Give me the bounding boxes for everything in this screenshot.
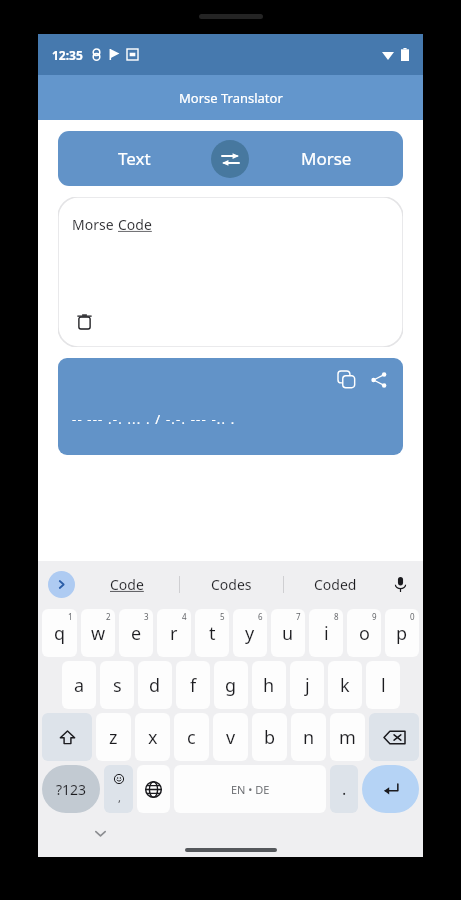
staticText: l	[381, 673, 386, 698]
button[interactable]: f	[176, 661, 210, 709]
button[interactable]: Code	[75, 561, 179, 607]
button[interactable]: More	[48, 571, 75, 598]
button[interactable]: Share	[366, 367, 391, 392]
staticText: q	[54, 621, 66, 646]
button[interactable]: Shift	[42, 713, 92, 761]
button[interactable]: x	[135, 713, 170, 761]
button[interactable]: Enter	[362, 765, 419, 813]
button[interactable]: t	[195, 609, 229, 657]
staticText: 5	[220, 611, 225, 622]
button[interactable]: b	[252, 713, 287, 761]
staticText: v	[226, 725, 236, 750]
button[interactable]: o	[347, 609, 381, 657]
staticText: i	[324, 621, 329, 646]
button[interactable]: g	[214, 661, 248, 709]
staticText: k	[340, 673, 350, 698]
staticText: e	[131, 621, 142, 646]
button[interactable]: j	[290, 661, 324, 709]
button[interactable]: Copy	[334, 367, 359, 392]
button[interactable]: Coded	[284, 561, 387, 607]
staticText: Morse	[301, 147, 352, 170]
button[interactable]: Swap	[211, 140, 249, 178]
staticText: z	[109, 725, 118, 750]
button[interactable]: n	[291, 713, 326, 761]
button[interactable]: Backspace	[369, 713, 419, 761]
button[interactable]: i	[309, 609, 343, 657]
staticText: Code	[118, 215, 152, 234]
button[interactable]: l	[366, 661, 400, 709]
staticText: Text	[118, 147, 151, 170]
staticText: Morse Translator	[179, 89, 283, 107]
staticText: m	[339, 725, 356, 750]
button[interactable]: y	[233, 609, 267, 657]
button[interactable]: Codes	[180, 561, 283, 607]
button[interactable]: Emoji and comma	[104, 765, 133, 813]
button[interactable]: a	[62, 661, 96, 709]
staticText: y	[245, 621, 255, 646]
button[interactable]: m	[330, 713, 365, 761]
staticText: 0	[410, 611, 415, 622]
staticText: t	[209, 621, 216, 646]
staticText: h	[263, 673, 275, 698]
staticText: -- --- .-. ... . / -.-. --- -.. .	[72, 410, 236, 428]
button[interactable]: Clear	[70, 307, 98, 335]
staticText: o	[359, 621, 370, 646]
staticText: w	[91, 621, 106, 646]
button[interactable]: q	[42, 609, 77, 657]
button[interactable]: Voice input	[387, 571, 413, 597]
staticText: x	[148, 725, 158, 750]
button[interactable]: Hide keyboard	[88, 821, 112, 845]
button[interactable]: d	[138, 661, 172, 709]
button[interactable]: r	[157, 609, 191, 657]
button[interactable]: Text	[58, 131, 211, 186]
staticText: .	[342, 778, 347, 800]
button[interactable]: k	[328, 661, 362, 709]
button[interactable]: v	[213, 713, 248, 761]
staticText: r	[170, 621, 178, 646]
staticText: 7	[296, 611, 301, 622]
staticText: Coded	[314, 575, 357, 594]
staticText: 6	[258, 611, 263, 622]
staticText: 2	[106, 611, 111, 622]
staticText: a	[74, 673, 85, 698]
staticText: Codes	[211, 575, 252, 594]
staticText: Code	[110, 575, 144, 594]
staticText: 3	[144, 611, 149, 622]
staticText: 4	[182, 611, 187, 622]
staticText: ,	[118, 790, 121, 805]
button[interactable]: u	[271, 609, 305, 657]
staticText: s	[113, 673, 122, 698]
staticText: 9	[372, 611, 377, 622]
button[interactable]: e	[119, 609, 153, 657]
button[interactable]: w	[81, 609, 115, 657]
staticText: j	[305, 673, 310, 698]
staticText: f	[190, 673, 197, 698]
staticText: c	[187, 725, 196, 750]
button[interactable]: s	[100, 661, 134, 709]
staticText: d	[149, 673, 161, 698]
staticText: 8	[334, 611, 339, 622]
staticText: EN • DE	[231, 782, 270, 797]
staticText: 1	[68, 611, 73, 622]
staticText: ?123	[56, 780, 87, 799]
button[interactable]: ?123	[42, 765, 100, 813]
button[interactable]: EN • DE	[174, 765, 326, 813]
button[interactable]: p	[385, 609, 419, 657]
staticText: Morse	[72, 215, 118, 234]
button[interactable]: Change language	[137, 765, 170, 813]
button[interactable]: .	[330, 765, 358, 813]
staticText: p	[396, 621, 408, 646]
button[interactable]: c	[174, 713, 209, 761]
staticText: g	[225, 673, 237, 698]
staticText: b	[264, 725, 276, 750]
button[interactable]: h	[252, 661, 286, 709]
staticText: n	[303, 725, 315, 750]
button[interactable]: z	[96, 713, 131, 761]
staticText: u	[282, 621, 294, 646]
staticText: 12:35	[52, 47, 83, 63]
button[interactable]: Morse	[249, 131, 403, 186]
